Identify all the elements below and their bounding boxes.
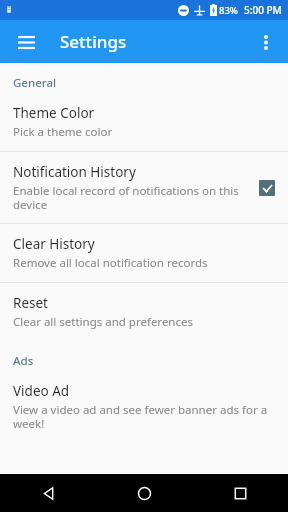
staticText: Pick a theme color (13, 124, 113, 140)
button[interactable]: Reset (0, 283, 288, 341)
button[interactable]: Video Ad (0, 371, 288, 442)
staticText: Enable local record of notifications on … (13, 183, 239, 212)
button[interactable]: Open navigation drawer (10, 26, 42, 58)
staticText: Reset (13, 294, 48, 312)
button[interactable]: Notification History enabled (259, 180, 275, 196)
staticText: Remove all local notification records (13, 255, 208, 271)
staticText: Video Ad (13, 382, 70, 400)
button[interactable]: Notification History (0, 152, 288, 223)
staticText: 5:00 PM (244, 3, 282, 17)
button[interactable]: More options (250, 26, 282, 58)
button[interactable]: Back (0, 474, 96, 512)
button[interactable]: Clear History (0, 224, 288, 282)
staticText: Ads (13, 353, 34, 369)
staticText: View a video ad and see fewer banner ads… (13, 402, 268, 431)
button[interactable]: Theme Color (0, 93, 288, 151)
staticText: Settings (60, 30, 127, 53)
staticText: 83% (219, 4, 238, 17)
staticText: General (13, 75, 57, 91)
staticText: Theme Color (13, 104, 95, 122)
staticText: Clear all settings and preferences (13, 314, 193, 330)
staticText: Notification History (13, 163, 136, 181)
staticText: Clear History (13, 235, 95, 253)
button[interactable]: Recent apps (192, 474, 288, 512)
button[interactable]: Home (96, 474, 192, 512)
